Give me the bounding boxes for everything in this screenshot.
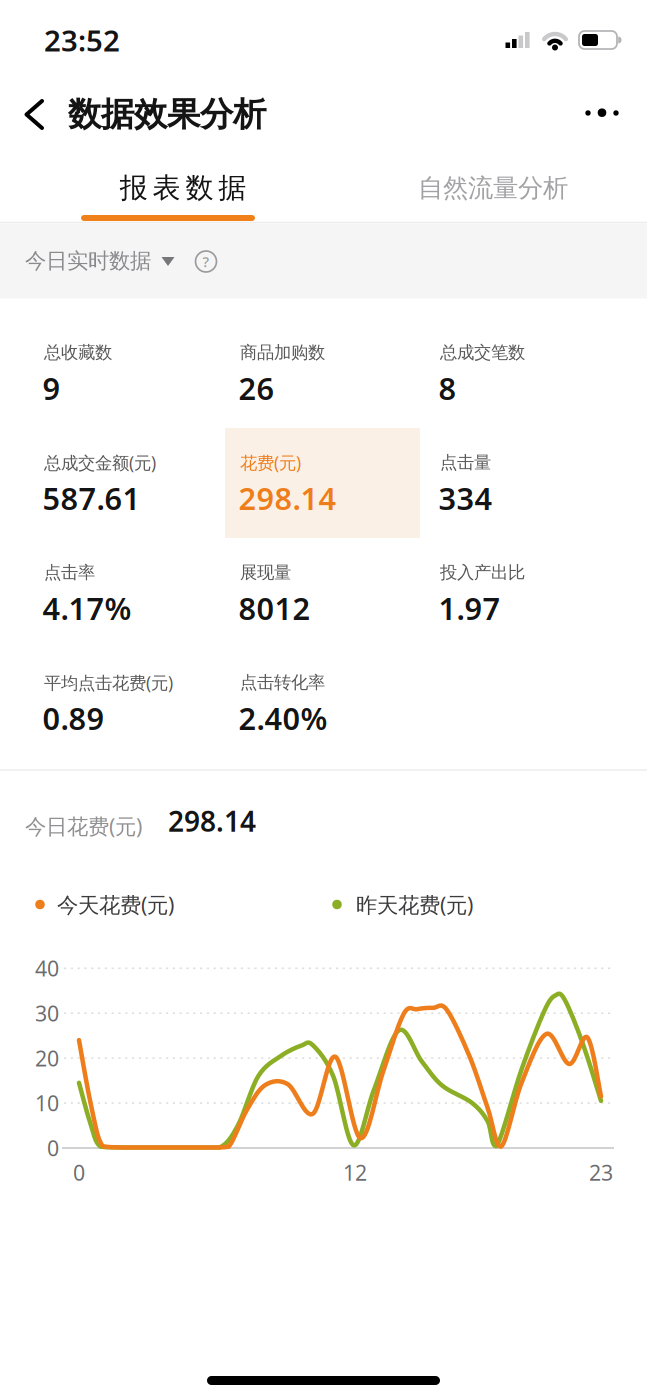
staticText: 投入产出比 xyxy=(440,562,525,583)
staticText: 自然流量分析 xyxy=(418,172,568,203)
staticText: 23 xyxy=(589,1158,613,1187)
staticText: 展现量 xyxy=(240,562,291,583)
staticText: 12 xyxy=(343,1158,367,1187)
button[interactable]: ? xyxy=(194,249,218,273)
staticText: 花费(元) xyxy=(240,451,301,474)
staticText: 今日实时数据 xyxy=(25,248,151,274)
staticText: 商品加购数 xyxy=(240,342,325,363)
staticText: 总成交金额(元) xyxy=(44,451,156,474)
staticText: 23:52 xyxy=(44,20,120,59)
staticText: 4.17% xyxy=(42,588,131,628)
staticText: 9 xyxy=(42,368,60,408)
staticText: 数据效果分析 xyxy=(68,94,266,135)
staticText: 334 xyxy=(438,478,492,518)
staticText: ? xyxy=(202,252,209,271)
staticText: 20 xyxy=(35,1044,59,1072)
staticText: 30 xyxy=(35,999,59,1027)
staticText: 昨天花费(元) xyxy=(356,890,473,919)
staticText: 0.89 xyxy=(42,698,104,738)
staticText: 2.40% xyxy=(238,698,327,738)
staticText: 总成交笔数 xyxy=(440,342,525,363)
staticText: 平均点击花费(元) xyxy=(44,671,173,694)
staticText: 10 xyxy=(35,1089,59,1117)
staticText: 今天花费(元) xyxy=(57,890,174,919)
staticText: 报表数据 xyxy=(120,171,246,205)
button[interactable]: 报表数据 xyxy=(21,160,344,216)
staticText: 8012 xyxy=(238,588,310,628)
staticText: 26 xyxy=(238,368,274,408)
button[interactable] xyxy=(22,98,46,131)
staticText: 0 xyxy=(47,1134,59,1162)
staticText: 总收藏数 xyxy=(44,342,112,363)
staticText: 1.97 xyxy=(438,588,500,628)
staticText: 40 xyxy=(35,954,59,982)
staticText: 587.61 xyxy=(42,478,140,518)
button[interactable] xyxy=(574,99,630,127)
button[interactable]: 今日实时数据 xyxy=(25,248,225,274)
staticText: 点击转化率 xyxy=(240,672,325,693)
staticText: 8 xyxy=(438,368,456,408)
staticText: 点击率 xyxy=(44,562,95,583)
button[interactable]: 自然流量分析 xyxy=(331,160,647,216)
staticText: 298.14 xyxy=(168,802,256,840)
staticText: 298.14 xyxy=(238,478,336,518)
staticText: 今日花费(元) xyxy=(25,812,142,840)
staticText: 点击量 xyxy=(440,452,491,473)
staticText: 0 xyxy=(73,1158,85,1187)
